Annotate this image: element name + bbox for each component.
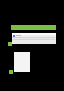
button[interactable] [12, 33, 56, 44]
